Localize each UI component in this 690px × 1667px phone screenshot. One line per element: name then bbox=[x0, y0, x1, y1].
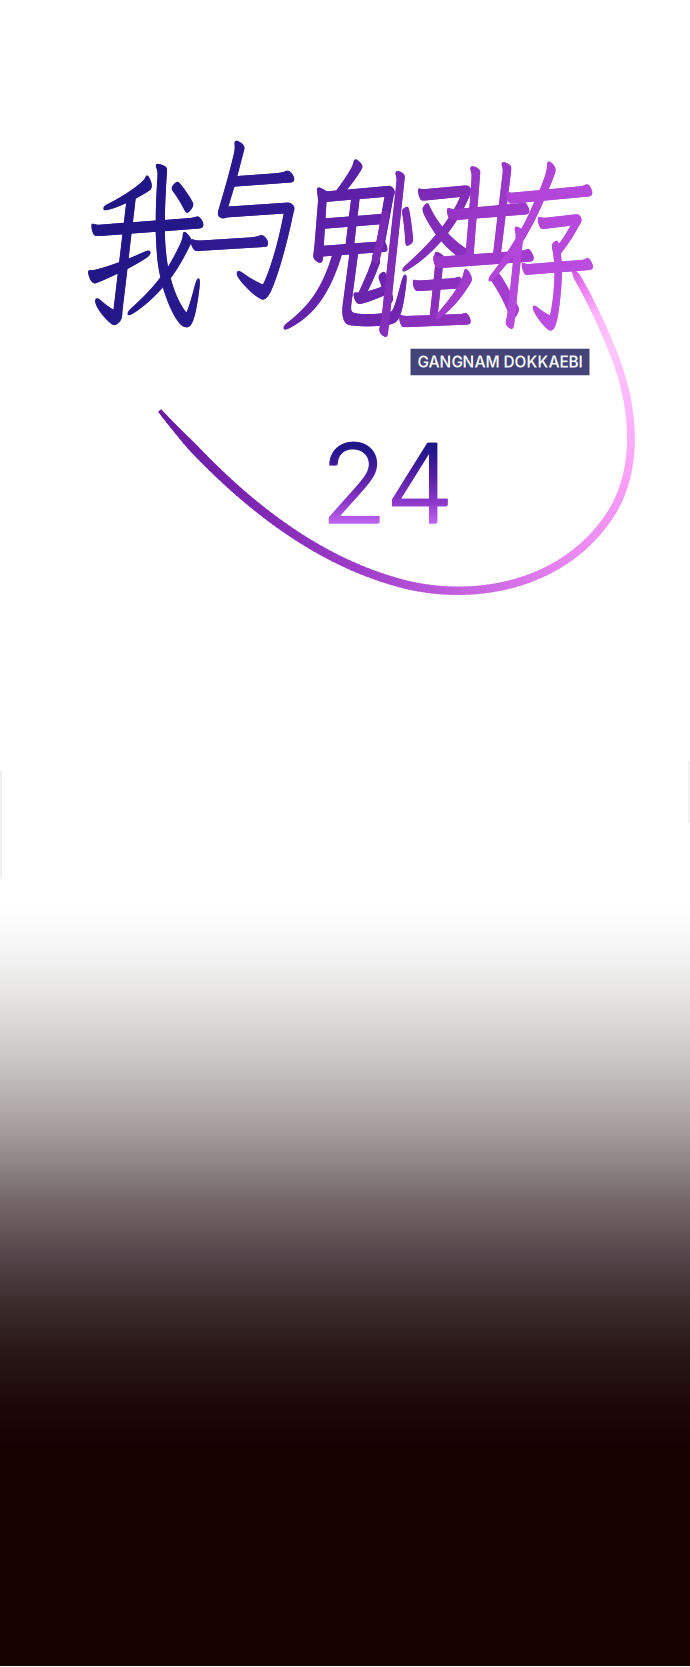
staticText: GANGNAM DOKKAEBI bbox=[417, 353, 582, 371]
